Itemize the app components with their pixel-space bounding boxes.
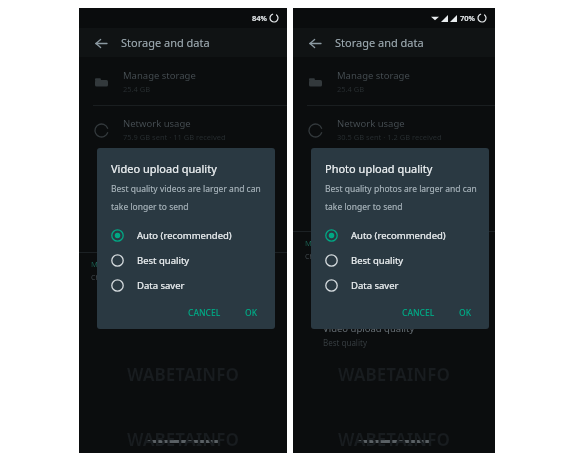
button[interactable]: OK [454,304,477,322]
staticText: Storage and data [121,35,210,50]
button[interactable]: Network usage [293,111,495,148]
staticText: Photo upload quality [323,276,416,289]
staticText: Best quality videos are larger and can [111,183,261,195]
staticText: WABETAINFO [127,363,239,386]
staticText: Data saver [137,279,185,292]
staticText: WABETAINFO [127,168,239,191]
button[interactable]: OK [240,304,263,322]
staticText: WABETAINFO [338,298,450,321]
button[interactable]: Back [305,33,325,53]
staticText: Video upload quality [323,322,415,335]
button[interactable]: CANCEL [397,304,440,322]
button[interactable]: Data saver [325,276,477,295]
staticText: Best quality [351,254,404,267]
button[interactable]: Network usage [79,111,287,148]
staticText: Video upload quality [109,301,201,314]
staticText: 70% [460,13,475,23]
staticText: Manage storage [123,69,196,82]
staticText: Manage storage [337,69,410,82]
staticText: Best quality [137,254,190,267]
staticText: Network usage [123,117,191,130]
staticText: Network usage [337,117,405,130]
button[interactable]: Manage storage [293,63,495,100]
staticText: Best quality photos are larger and can [325,183,477,195]
staticText: 84% [252,13,267,23]
staticText: 25.4 GB [337,84,365,94]
staticText: Best quality [323,337,367,348]
staticText: take longer to send [325,201,403,213]
button[interactable]: Video upload quality [293,320,495,350]
staticText: Data saver [351,279,399,292]
staticText: OK [459,307,472,319]
button[interactable]: Auto (recommended) [325,226,477,245]
staticText: Choose the quality of media files to be … [305,252,447,262]
staticText: CANCEL [402,307,435,319]
button[interactable]: Data saver [111,276,263,295]
staticText: Choose the quality of media files to be … [91,273,233,283]
staticText: 75.9 GB sent · 11 GB received [123,132,226,142]
staticText: WABETAINFO [127,298,239,321]
staticText: WABETAINFO [127,233,239,256]
button[interactable]: Best quality [111,251,263,270]
staticText: Auto (recommended) [137,229,232,242]
staticText: Photo upload quality [325,161,433,176]
staticText: Video upload quality [111,161,217,176]
staticText: WABETAINFO [338,428,450,451]
button[interactable]: Best quality [325,251,477,270]
staticText: 25.4 GB [123,84,151,94]
staticText: take longer to send [111,201,189,213]
staticText: WABETAINFO [127,428,239,451]
staticText: Auto (recommended) [323,291,403,302]
staticText: Media upload quality [305,238,380,248]
staticText: Storage and data [335,35,424,50]
button[interactable]: Back [91,33,111,53]
staticText: Auto (recommended) [351,229,446,242]
button[interactable]: Photo upload quality [293,274,495,304]
staticText: CANCEL [188,307,221,319]
staticText: 30.5 GB sent · 1.2 GB received [337,132,442,142]
button[interactable]: CANCEL [183,304,226,322]
button[interactable]: Video upload quality [79,299,287,329]
staticText: WABETAINFO [338,233,450,256]
staticText: Media upload quality [91,259,166,269]
staticText: OK [245,307,258,319]
button[interactable]: Manage storage [79,63,287,100]
button[interactable]: Auto (recommended) [111,226,263,245]
staticText: WABETAINFO [338,168,450,191]
staticText: WABETAINFO [338,363,450,386]
